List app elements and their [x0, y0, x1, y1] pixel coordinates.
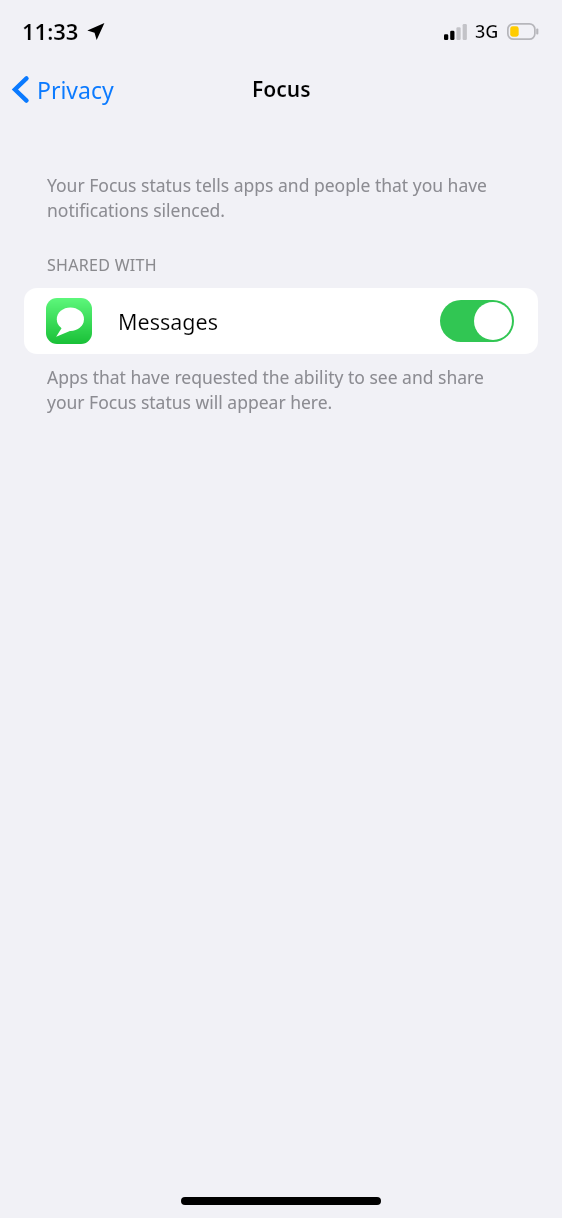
staticText: Your Focus status tells apps and people …: [47, 173, 500, 222]
staticText: Focus: [252, 75, 311, 104]
staticText: SHARED WITH: [47, 254, 157, 276]
staticText: 11:33: [22, 16, 79, 46]
button[interactable]: Messages: [24, 288, 538, 354]
staticText: Apps that have requested the ability to …: [47, 365, 504, 414]
staticText: Messages: [118, 307, 218, 336]
button[interactable]: Privacy: [0, 66, 128, 113]
button[interactable]: Share Focus status with Messages, on: [440, 300, 514, 342]
staticText: Privacy: [37, 74, 114, 105]
staticText: 3G: [475, 19, 499, 44]
